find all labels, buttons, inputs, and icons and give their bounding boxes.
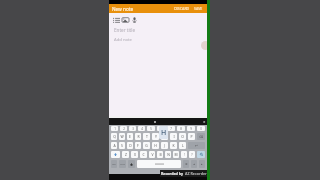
- button[interactable]: 5: [147, 126, 155, 131]
- button[interactable]: Recorded by: [160, 170, 207, 177]
- staticText: ⚙: [185, 163, 188, 166]
- button[interactable]: P: [188, 133, 195, 140]
- staticText: SAVE: [194, 6, 203, 11]
- staticText: 3: [132, 127, 134, 131]
- staticText: G: [145, 143, 148, 148]
- staticText: Q: [113, 134, 116, 139]
- button[interactable]: ▸: [199, 160, 205, 168]
- staticText: !: [184, 153, 185, 157]
- staticText: ?123: [120, 163, 125, 166]
- staticText: X: [134, 152, 136, 157]
- staticText: V: [151, 152, 154, 157]
- button[interactable]: Checklist: [112, 15, 121, 24]
- button[interactable]: Space: [137, 160, 181, 168]
- staticText: New note: [112, 6, 134, 12]
- button[interactable]: Backspace: [197, 133, 205, 140]
- button[interactable]: Y: [152, 133, 159, 140]
- staticText: 4: [141, 127, 143, 131]
- staticText: ◂: [193, 163, 195, 166]
- button[interactable]: H: [152, 142, 159, 149]
- button[interactable]: ?123: [119, 160, 126, 168]
- button[interactable]: K: [170, 142, 177, 149]
- button[interactable]: 7: [167, 126, 175, 131]
- button[interactable]: 1: [111, 126, 118, 131]
- button[interactable]: 8: [177, 126, 185, 131]
- button[interactable]: N: [165, 151, 171, 158]
- button[interactable]: Add note: [114, 37, 207, 43]
- staticText: C: [142, 152, 145, 157]
- staticText: J: [164, 143, 165, 148]
- button[interactable]: Close suggestions: [202, 118, 207, 125]
- button[interactable]: A: [111, 142, 117, 149]
- button[interactable]: Add image: [121, 15, 130, 24]
- staticText: ?: [191, 153, 193, 157]
- button[interactable]: T: [143, 133, 150, 140]
- button[interactable]: Ctrl: [111, 160, 117, 168]
- button[interactable]: G: [143, 142, 150, 149]
- button[interactable]: ?: [189, 151, 195, 158]
- button[interactable]: Enter: [188, 142, 205, 149]
- staticText: W: [120, 134, 124, 139]
- button[interactable]: Emoji: [128, 160, 135, 168]
- button[interactable]: X: [131, 151, 138, 158]
- button[interactable]: L: [179, 142, 186, 149]
- staticText: 8: [180, 127, 182, 131]
- staticText: 6: [160, 127, 162, 131]
- button[interactable]: ◂: [191, 160, 197, 168]
- button[interactable]: Search: [197, 151, 205, 158]
- button[interactable]: R: [135, 133, 141, 140]
- staticText: Add note: [114, 37, 132, 43]
- button[interactable]: F: [135, 142, 141, 149]
- staticText: ↵: [195, 144, 198, 148]
- button[interactable]: B: [157, 151, 163, 158]
- staticText: 2: [123, 127, 125, 131]
- button[interactable]: 2: [120, 126, 127, 131]
- staticText: 9: [190, 127, 192, 131]
- button[interactable]: 6: [157, 126, 165, 131]
- button[interactable]: DISCARD: [172, 6, 192, 11]
- staticText: T: [146, 134, 148, 139]
- button[interactable]: 3: [129, 126, 136, 131]
- button[interactable]: D: [127, 142, 133, 149]
- button[interactable]: U: [161, 133, 168, 140]
- button[interactable]: S: [119, 142, 125, 149]
- button[interactable]: Z: [122, 151, 129, 158]
- button[interactable]: Enter title: [114, 27, 207, 33]
- button[interactable]: M: [173, 151, 179, 158]
- button[interactable]: !: [181, 151, 187, 158]
- staticText: 1: [114, 127, 116, 131]
- button[interactable]: O: [179, 133, 186, 140]
- staticText: 7: [170, 127, 172, 131]
- staticText: A: [113, 143, 116, 148]
- staticText: H: [161, 128, 167, 138]
- button[interactable]: 4: [138, 126, 145, 131]
- button[interactable]: W: [119, 133, 125, 140]
- staticText: E: [129, 134, 131, 139]
- button[interactable]: SAVE: [192, 6, 205, 11]
- button[interactable]: 9: [187, 126, 195, 131]
- staticText: R: [137, 134, 140, 139]
- button[interactable]: 0: [197, 126, 205, 131]
- button[interactable]: Shift: [111, 151, 120, 158]
- staticText: 0: [200, 127, 202, 131]
- staticText: U: [163, 134, 166, 139]
- staticText: P: [190, 134, 193, 139]
- button[interactable]: C: [140, 151, 147, 158]
- button[interactable]: ⚙: [183, 160, 189, 168]
- button[interactable]: Q: [111, 133, 117, 140]
- staticText: Z: [125, 152, 127, 157]
- button[interactable]: I: [170, 133, 177, 140]
- button[interactable]: V: [149, 151, 155, 158]
- button[interactable]: [145, 118, 164, 125]
- staticText: F: [137, 143, 139, 148]
- button[interactable]: Voice note: [130, 15, 139, 24]
- staticText: B: [159, 152, 162, 157]
- button[interactable]: E: [127, 133, 133, 140]
- button[interactable]: J: [161, 142, 168, 149]
- staticText: DISCARD: [174, 6, 190, 11]
- staticText: L: [182, 143, 184, 148]
